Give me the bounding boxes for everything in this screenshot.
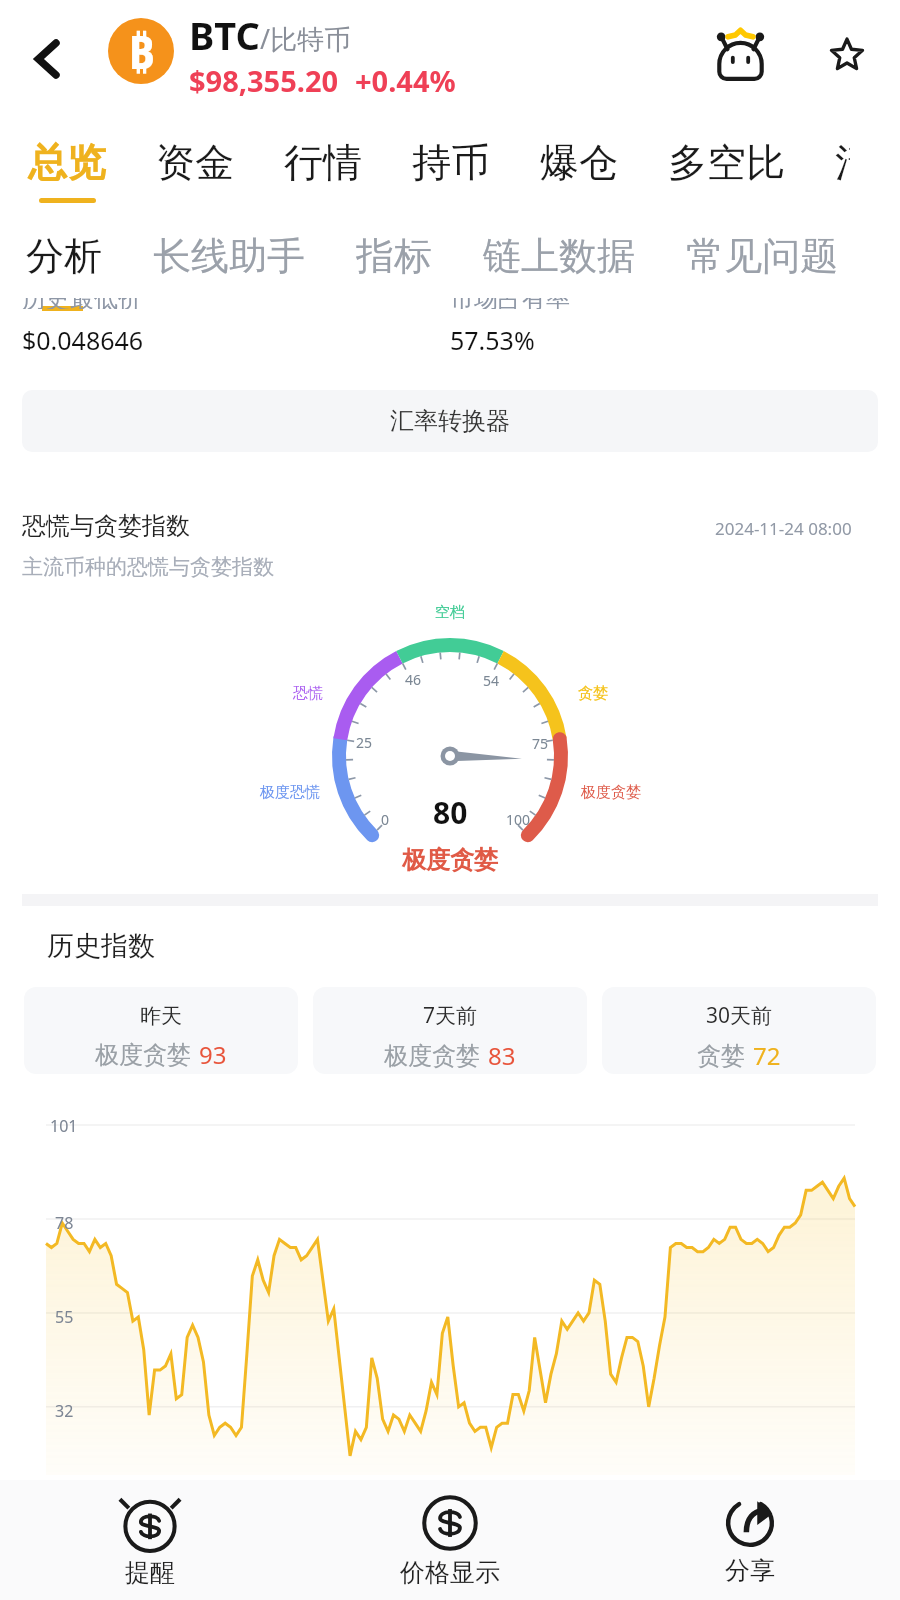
staticText: 主流币种的恐慌与贪婪指数 xyxy=(22,554,274,580)
staticText: 资金 xyxy=(156,138,234,187)
staticText: 多空比 xyxy=(668,138,785,187)
staticText: 极度贪婪 xyxy=(581,783,641,802)
staticText: 分享 xyxy=(725,1555,775,1586)
staticText: 价格显示 xyxy=(400,1557,500,1588)
staticText: $98,355.20 xyxy=(189,61,339,100)
button[interactable]: Price display xyxy=(300,1480,600,1600)
staticText: 指标 xyxy=(356,232,432,280)
staticText: 32 xyxy=(55,1400,74,1422)
staticText: 80 xyxy=(433,792,468,833)
button[interactable]: 汇率转换器 xyxy=(22,390,878,452)
staticText: 72 xyxy=(753,1039,781,1072)
staticText: 贪婪 xyxy=(697,1041,745,1071)
button[interactable]: 分析 xyxy=(26,214,153,298)
staticText: 长线助手 xyxy=(153,232,305,280)
staticText: ₿ xyxy=(128,20,155,83)
staticText: 46 xyxy=(405,670,422,689)
staticText: 提醒 xyxy=(125,1557,175,1588)
staticText: 极度贪婪 xyxy=(384,1041,480,1071)
button[interactable]: Back xyxy=(0,0,96,118)
staticText: 83 xyxy=(488,1039,516,1072)
staticText: $0.048646 xyxy=(22,323,144,350)
staticText: 2024-11-24 08:00 xyxy=(715,517,852,540)
staticText: 分析 xyxy=(26,232,102,280)
button[interactable]: 链上数据 xyxy=(483,214,686,298)
button[interactable]: Add to favorites xyxy=(797,0,897,113)
staticText: 75 xyxy=(532,734,549,753)
button[interactable]: 清算 xyxy=(835,118,900,214)
staticText: BTC xyxy=(189,9,260,61)
staticText: 30天前 xyxy=(706,1001,773,1030)
staticText: 爆仓 xyxy=(540,138,618,187)
staticText: 极度贪婪 xyxy=(95,1040,191,1070)
staticText: 54 xyxy=(483,671,500,690)
staticText: 持币 xyxy=(412,138,490,187)
staticText: 行情 xyxy=(284,138,362,187)
staticText: 昨天 xyxy=(140,1003,182,1029)
button[interactable]: 长线助手 xyxy=(153,214,356,298)
button[interactable]: 7天前 xyxy=(313,987,587,1074)
button[interactable]: 资金 xyxy=(156,118,284,214)
staticText: 市场占有率 xyxy=(450,298,570,309)
staticText: 100 xyxy=(506,810,531,829)
staticText: 57.53% xyxy=(450,323,535,350)
staticText: 极度贪婪 xyxy=(402,845,498,875)
staticText: 78 xyxy=(55,1212,74,1234)
button[interactable]: AI assistant xyxy=(690,0,790,112)
staticText: 历史指数 xyxy=(47,929,155,963)
button[interactable]: 总览 xyxy=(28,118,156,214)
button[interactable]: Share xyxy=(600,1480,900,1600)
button[interactable]: 爆仓 xyxy=(540,118,668,214)
staticText: 清算 xyxy=(835,138,850,187)
button[interactable]: 指标 xyxy=(356,214,483,298)
button[interactable]: 常见问题 xyxy=(686,214,889,298)
staticText: 历史最低价 xyxy=(22,298,142,309)
staticText: 极度恐慌 xyxy=(260,783,320,802)
button[interactable]: Price alert xyxy=(0,1480,300,1600)
staticText: 空档 xyxy=(435,603,465,622)
staticText: 恐慌 xyxy=(293,684,323,703)
button[interactable]: 昨天 xyxy=(24,987,298,1074)
staticText: 贪婪 xyxy=(578,684,608,703)
staticText: 101 xyxy=(50,1115,78,1137)
staticText: 93 xyxy=(199,1038,227,1071)
staticText: 常见问题 xyxy=(686,232,838,280)
button[interactable]: 持币 xyxy=(412,118,540,214)
staticText: 恐慌与贪婪指数 xyxy=(22,511,190,541)
button[interactable]: 行情 xyxy=(284,118,412,214)
staticText: /比特币 xyxy=(260,20,352,57)
button[interactable]: 30天前 xyxy=(602,987,876,1074)
staticText: 链上数据 xyxy=(483,232,635,280)
staticText: 55 xyxy=(55,1306,74,1328)
staticText: 总览 xyxy=(28,138,106,187)
staticText: 25 xyxy=(356,733,373,752)
staticText: 7天前 xyxy=(423,1001,478,1030)
staticText: +0.44% xyxy=(355,61,456,100)
staticText: 汇率转换器 xyxy=(390,406,510,436)
staticText: 0 xyxy=(381,810,390,829)
button[interactable]: 多空比 xyxy=(668,118,835,214)
